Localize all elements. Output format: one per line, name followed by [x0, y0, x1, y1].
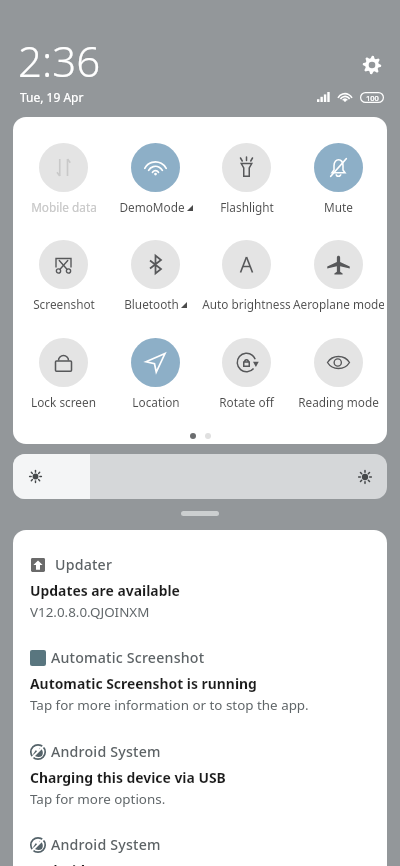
button[interactable]: Lock screen: [18, 338, 109, 414]
button[interactable]: DemoMode: [110, 143, 201, 219]
staticText: Charging this device via USB: [30, 768, 226, 787]
button[interactable]: Screenshot: [18, 240, 109, 316]
staticText: Reading mode: [298, 394, 379, 410]
staticText: Automatic Screenshot is running: [30, 674, 257, 693]
staticText: Android System: [51, 835, 161, 854]
button[interactable]: Flashlight: [201, 143, 292, 219]
button[interactable]: Settings: [359, 52, 385, 78]
button[interactable]: Automatic Screenshot: [30, 648, 374, 714]
button[interactable]: Mute: [293, 143, 384, 219]
button[interactable]: Updater: [30, 555, 374, 621]
button[interactable]: Reading mode: [293, 338, 384, 414]
staticText: Lock screen: [31, 394, 96, 410]
staticText: 2:36: [18, 32, 101, 89]
staticText: Automatic Screenshot: [51, 648, 205, 667]
staticText: V12.0.8.0.QJOINXM: [30, 603, 150, 621]
button[interactable]: Auto brightness: [201, 240, 292, 316]
staticText: Mobile data: [31, 199, 97, 215]
button[interactable]: Location: [110, 338, 201, 414]
staticText: Location: [132, 394, 180, 410]
staticText: Screenshot: [33, 296, 95, 312]
button[interactable]: Android System: [30, 742, 374, 808]
staticText: Mute: [324, 199, 353, 215]
staticText: Updates are available: [30, 581, 180, 600]
button[interactable]: [13, 454, 387, 499]
staticText: Bluetooth: [124, 296, 179, 312]
staticText: Aeroplane mode: [293, 296, 384, 312]
staticText: Android Setup: [30, 861, 129, 866]
staticText: 100: [366, 93, 379, 103]
button[interactable]: Android System: [30, 835, 374, 866]
staticText: DemoMode: [119, 199, 185, 215]
staticText: Flashlight: [220, 199, 274, 215]
staticText: Tue, 19 Apr: [20, 89, 84, 105]
staticText: Updater: [55, 555, 113, 574]
staticText: Tap for more options.: [30, 790, 166, 808]
staticText: Rotate off: [219, 394, 274, 410]
button[interactable]: Bluetooth: [110, 240, 201, 316]
button[interactable]: Rotate off: [201, 338, 292, 414]
button[interactable]: Mobile data: [18, 143, 109, 219]
staticText: Auto brightness: [202, 296, 291, 312]
staticText: Tap for more information or to stop the …: [30, 696, 309, 714]
button[interactable]: Aeroplane mode: [293, 240, 384, 316]
staticText: Android System: [51, 742, 161, 761]
